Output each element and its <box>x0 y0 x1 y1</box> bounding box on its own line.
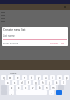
staticText: m <box>52 86 55 90</box>
button[interactable]: p <box>64 75 69 80</box>
button[interactable]: CANCEL <box>50 42 59 45</box>
button[interactable]: g <box>33 80 38 85</box>
staticText: b <box>39 86 41 90</box>
staticText: j <box>49 81 50 85</box>
button[interactable]: q <box>1 75 6 80</box>
staticText: Enter a name <box>3 41 18 44</box>
staticText: g <box>35 81 37 85</box>
button[interactable]: x <box>16 85 21 90</box>
button[interactable]: o <box>57 75 62 80</box>
button[interactable]: u <box>43 75 48 80</box>
button[interactable]: , <box>9 90 14 95</box>
staticText: List name <box>3 34 15 38</box>
staticText: , <box>11 91 12 95</box>
button[interactable]: a <box>5 80 10 85</box>
button[interactable]: More options <box>63 5 67 9</box>
staticText: i <box>52 76 53 80</box>
staticText: q <box>3 76 5 80</box>
staticText: c <box>25 86 27 90</box>
staticText: Create new list <box>3 28 26 32</box>
button[interactable]: d <box>19 80 24 85</box>
button[interactable]: r <box>22 75 27 80</box>
button[interactable]: e <box>15 75 20 80</box>
button[interactable]: f <box>26 80 31 85</box>
staticText: a <box>7 81 9 85</box>
staticText: k <box>56 81 58 85</box>
staticText: OK <box>61 42 65 45</box>
button[interactable]: s <box>12 80 17 85</box>
button[interactable]: y <box>36 75 41 80</box>
button[interactable]: t <box>29 75 34 80</box>
staticText: CANCEL <box>50 42 59 45</box>
staticText: v <box>32 86 34 90</box>
staticText: t <box>31 76 32 80</box>
staticText: r <box>24 76 26 80</box>
staticText: l <box>63 81 64 85</box>
button[interactable]: v <box>30 85 35 90</box>
button[interactable]: l <box>61 80 66 85</box>
staticText: z <box>11 86 13 90</box>
staticText: w <box>9 76 12 80</box>
button[interactable]: Enter <box>56 90 62 95</box>
button[interactable]: h <box>40 80 45 85</box>
staticText: y <box>38 76 40 80</box>
staticText: . <box>51 91 52 95</box>
button[interactable]: b <box>37 85 42 90</box>
staticText: e <box>17 76 19 80</box>
staticText: o <box>59 76 61 80</box>
button[interactable]: j <box>47 80 52 85</box>
staticText: name <box>10 71 17 74</box>
button[interactable]: w <box>8 75 13 80</box>
button[interactable]: OK <box>61 42 65 45</box>
staticText: p <box>66 76 68 80</box>
staticText: f <box>28 81 29 85</box>
button[interactable]: m <box>51 85 56 90</box>
staticText: d <box>21 81 23 85</box>
button[interactable]: c <box>23 85 28 90</box>
staticText: s <box>14 81 16 85</box>
button[interactable]: i <box>50 75 55 80</box>
button[interactable]: . <box>49 90 54 95</box>
button[interactable]: n <box>44 85 49 90</box>
staticText: h <box>42 81 44 85</box>
staticText: u <box>45 76 47 80</box>
button[interactable]: k <box>54 80 59 85</box>
button[interactable]: z <box>9 85 14 90</box>
staticText: x <box>18 86 20 90</box>
staticText: n <box>46 86 48 90</box>
